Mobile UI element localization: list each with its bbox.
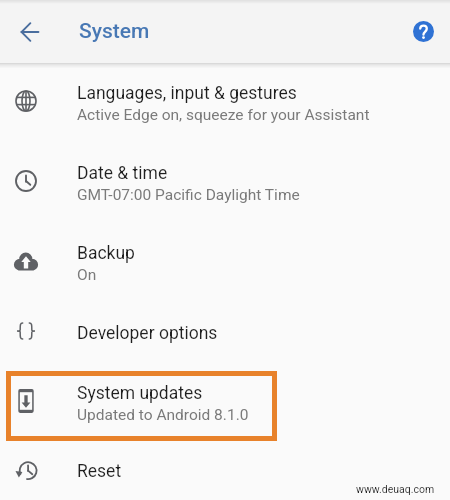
- staticText: Updated to Android 8.1.0: [77, 406, 249, 424]
- button[interactable]: Date & time: [0, 143, 450, 223]
- button[interactable]: Reset: [0, 443, 450, 500]
- staticText: Backup: [77, 243, 135, 264]
- staticText: GMT-07:00 Pacific Daylight Time: [77, 186, 300, 204]
- button[interactable]: Backup: [0, 223, 450, 303]
- staticText: Reset: [77, 461, 122, 482]
- button[interactable]: Developer options: [0, 303, 450, 363]
- staticText: Date & time: [77, 163, 168, 184]
- staticText: On: [77, 266, 97, 284]
- button[interactable]: Navigate up: [0, 0, 58, 63]
- staticText: Active Edge on, squeeze for your Assista…: [77, 106, 370, 124]
- button[interactable]: Languages, input & gestures: [0, 63, 450, 143]
- staticText: System updates: [77, 383, 203, 404]
- staticText: Languages, input & gestures: [77, 83, 297, 104]
- staticText: www.deuaq.com: [356, 483, 435, 495]
- button[interactable]: Help: [396, 0, 450, 63]
- staticText: Developer options: [77, 323, 218, 344]
- staticText: System: [79, 19, 150, 44]
- button[interactable]: System updates: [0, 363, 450, 443]
